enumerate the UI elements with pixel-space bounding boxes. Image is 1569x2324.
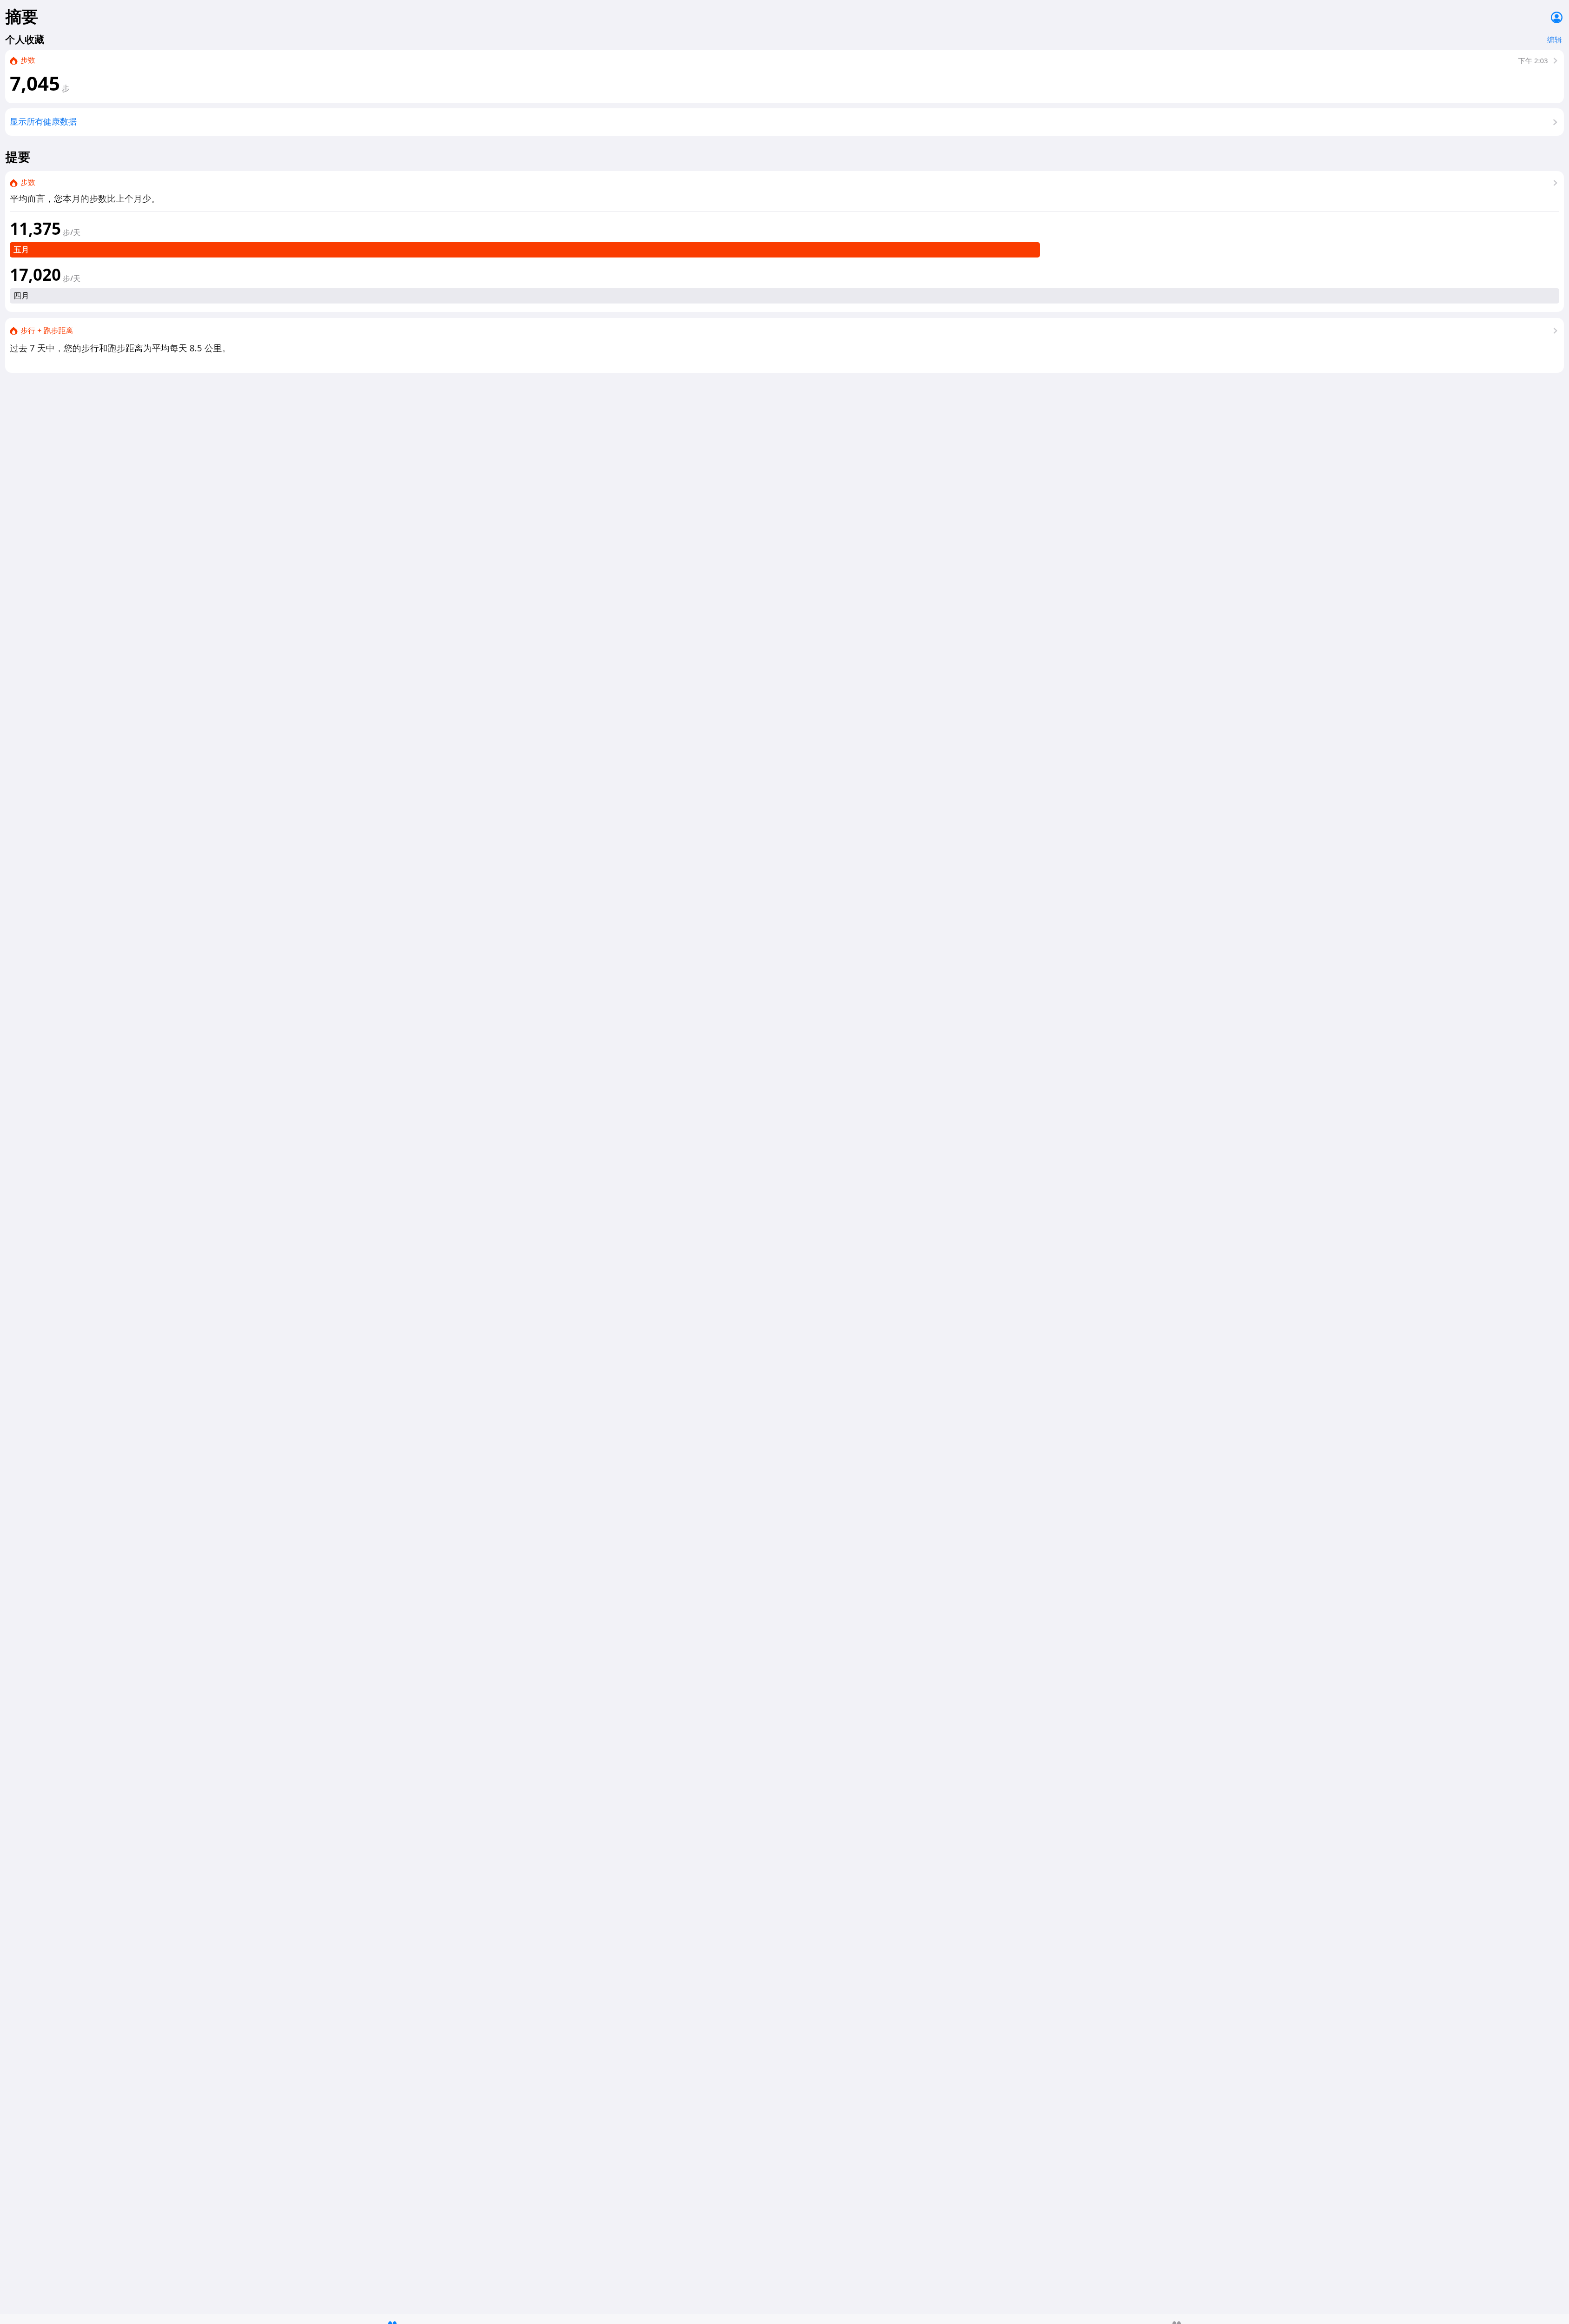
staticText: 步/天 — [63, 273, 81, 284]
staticText: 下午 2:03 — [1518, 56, 1548, 65]
staticText: 步数 — [20, 56, 35, 65]
button[interactable]: Sharing — [784, 2314, 1569, 2324]
button[interactable]: 编辑 — [1546, 34, 1563, 46]
staticText: 步/天 — [63, 227, 81, 238]
staticText: 显示所有健康数据 — [10, 117, 77, 127]
staticText: 编辑 — [1547, 35, 1562, 45]
staticText: 摘要 — [5, 7, 38, 27]
button[interactable]: Summary — [0, 2314, 784, 2324]
staticText: 过去 7 天中，您的步行和跑步距离为平均每天 8.5 公里。 — [10, 342, 231, 354]
staticText: 17,020 — [10, 264, 61, 286]
staticText: 步数 — [20, 178, 35, 187]
button[interactable]: Profile — [1550, 11, 1563, 24]
staticText: 7,045 — [10, 70, 60, 96]
button[interactable]: 步数 — [5, 171, 1564, 312]
button[interactable]: 步行 + 跑步距离 — [5, 318, 1564, 373]
staticText: 步行 + 跑步距离 — [20, 325, 73, 336]
staticText: 11,375 — [10, 218, 61, 240]
staticText: 步 — [62, 84, 70, 93]
staticText: 四月 — [13, 291, 29, 301]
button[interactable]: 显示所有健康数据 — [5, 108, 1564, 136]
staticText: 平均而言，您本月的步数比上个月少。 — [10, 193, 160, 205]
button[interactable]: 步数 — [5, 50, 1564, 103]
staticText: 五月 — [13, 245, 29, 255]
staticText: 提要 — [5, 150, 30, 165]
staticText: 个人收藏 — [5, 34, 44, 46]
